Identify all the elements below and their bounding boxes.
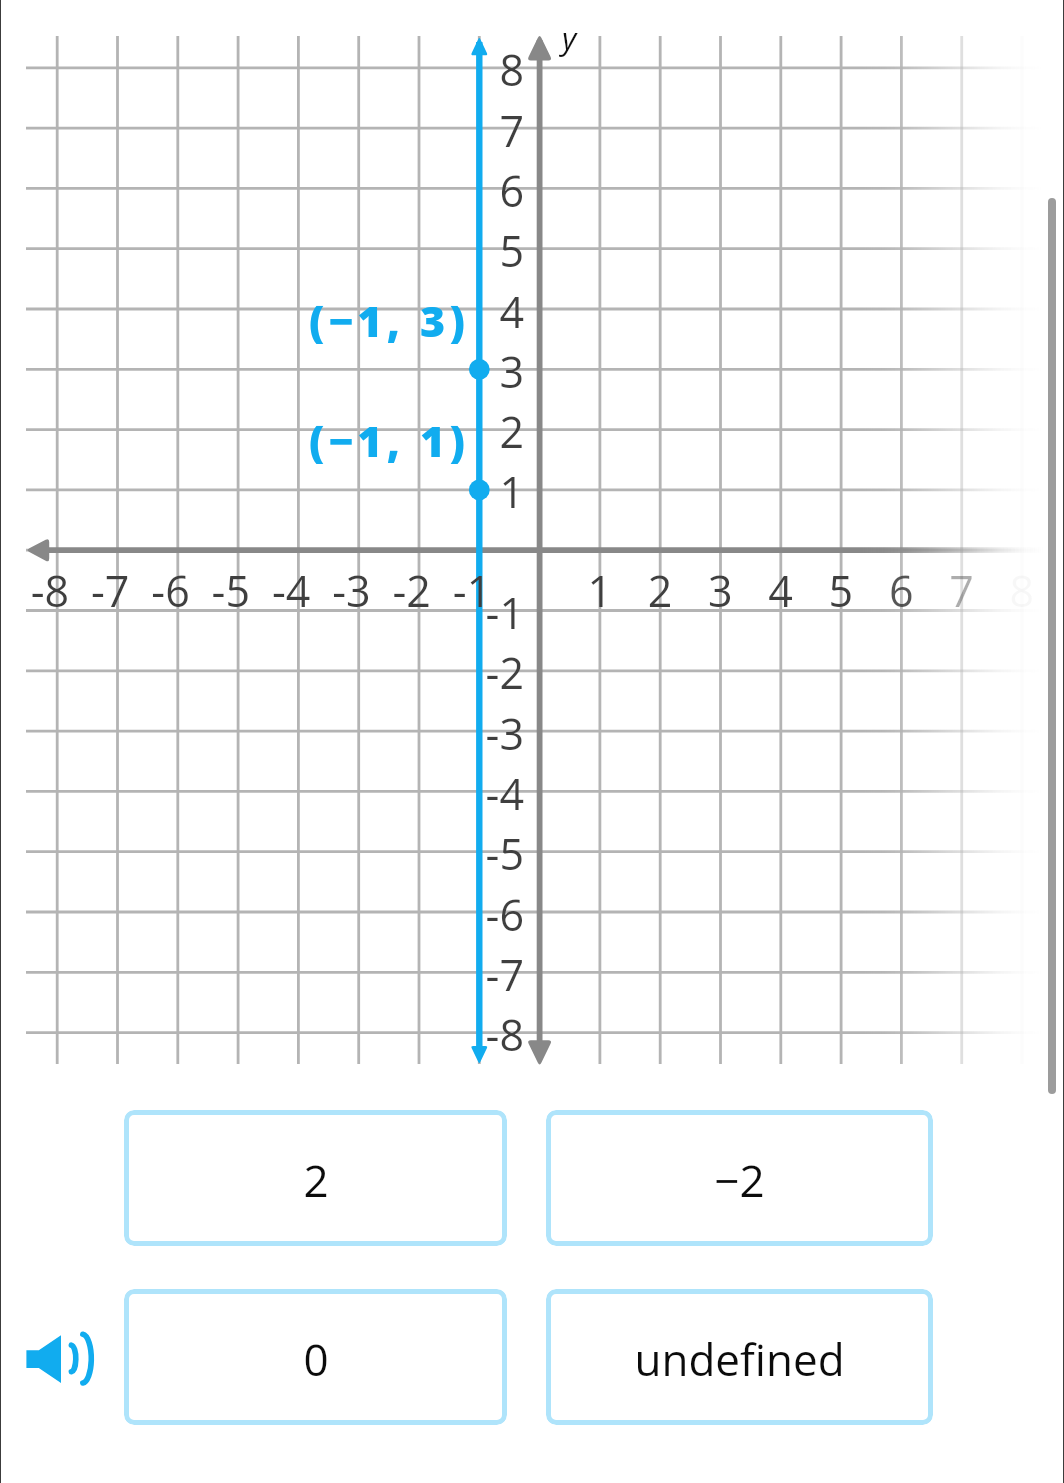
- button[interactable]: 0: [124, 1289, 507, 1425]
- button[interactable]: 2: [124, 1110, 507, 1246]
- button[interactable]: −2: [546, 1110, 933, 1246]
- staticText: −2: [714, 1150, 765, 1210]
- button[interactable]: undefined: [546, 1289, 933, 1425]
- button[interactable]: Listen to the problem: [18, 1322, 104, 1394]
- staticText: 2: [303, 1150, 329, 1210]
- staticText: 0: [303, 1329, 329, 1389]
- staticText: undefined: [634, 1329, 845, 1389]
